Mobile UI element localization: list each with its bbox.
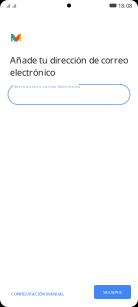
- staticText: Añade tu dirección de correo electrónico: [10, 54, 128, 78]
- button[interactable]: SIGUIENTE: [94, 285, 131, 299]
- button[interactable]: CONFIGURACIÓN MANUAL: [7, 286, 68, 302]
- staticText: 18:08: [118, 1, 132, 9]
- staticText: SIGUIENTE: [103, 289, 122, 295]
- staticText: CONFIGURACIÓN MANUAL: [11, 291, 64, 297]
- staticText: Introduce tu correo electrónico: [14, 83, 80, 89]
